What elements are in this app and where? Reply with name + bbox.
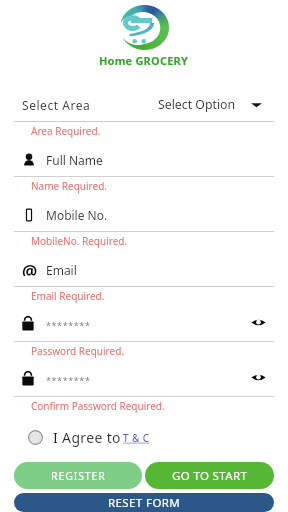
staticText: Area Required. [31,124,101,138]
staticText: Email [46,262,77,278]
staticText: Confirm Password Required. [31,399,165,413]
button[interactable]: T & C [123,430,150,444]
other: Select Option dropdown [250,99,263,110]
button[interactable]: Select Area [22,88,274,121]
button[interactable]: Select Option [158,96,274,113]
staticText: RESET FORM [108,495,181,511]
button[interactable]: @ [22,253,274,286]
staticText: Name Required. [31,179,107,193]
staticText: @ [22,260,38,276]
staticText: MobileNo. Required. [31,234,128,248]
button[interactable]: Toggle password visibility [252,314,274,336]
staticText: Select Option [158,96,236,113]
button[interactable]: Toggle password visibility [252,369,274,391]
staticText: Password Required. [31,344,124,358]
button[interactable]: RESET FORM [14,493,274,512]
staticText: REGISTER [51,469,106,483]
button[interactable]: ******** [22,308,274,341]
button[interactable]: GO TO START [145,462,274,489]
staticText: Home GROCERY [99,53,189,68]
staticText: ******** [46,374,91,386]
button[interactable]: ******** [22,363,274,396]
staticText: Select Area [22,97,91,113]
button[interactable]: Full Name [22,143,274,176]
button[interactable]: Mobile No. [22,198,274,231]
staticText: I Agree to [53,428,121,447]
button[interactable]: REGISTER [14,462,142,489]
staticText: Mobile No. [46,207,108,223]
staticText: Email Required. [31,289,105,303]
button[interactable]: I agree checkbox [28,430,43,445]
staticText: GO TO START [172,468,248,484]
staticText: Full Name [46,152,103,168]
staticText: ******** [46,319,91,331]
